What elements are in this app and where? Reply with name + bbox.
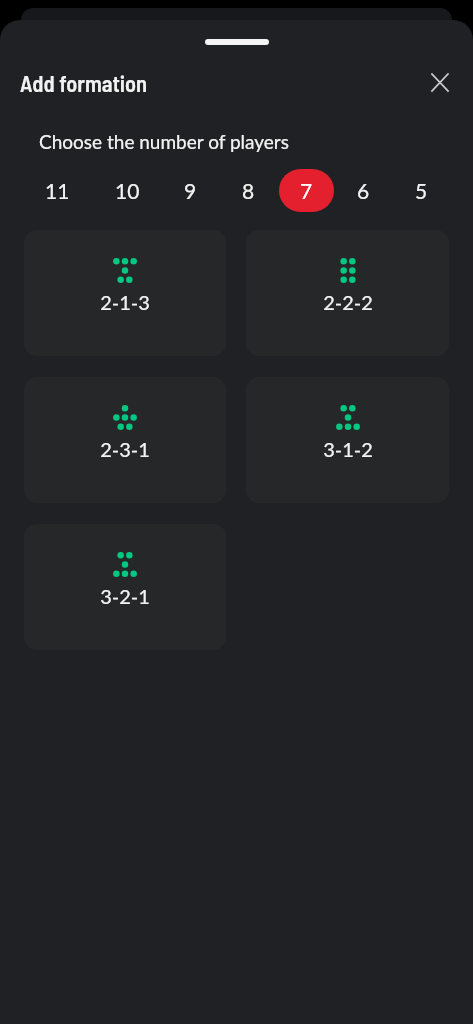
button[interactable]: 2-1-3	[24, 230, 226, 356]
button[interactable]: 2-3-1	[24, 377, 226, 503]
staticText: 10	[115, 178, 140, 203]
staticText: Add formation	[20, 69, 148, 96]
staticText: Choose the number of players	[39, 130, 289, 153]
button[interactable]: 9	[163, 169, 218, 212]
button[interactable]: 3-1-2	[246, 377, 449, 503]
button[interactable]: 10	[94, 169, 161, 212]
staticText: 6	[357, 178, 370, 203]
button[interactable]: 5	[394, 169, 449, 212]
staticText: 7	[300, 178, 313, 203]
staticText: 8	[242, 178, 255, 203]
staticText: 11	[45, 178, 70, 203]
staticText: 3-2-1	[100, 584, 150, 608]
staticText: 2-3-1	[100, 437, 150, 461]
button[interactable]: 7	[279, 169, 334, 212]
staticText: 2-1-3	[100, 290, 150, 314]
button[interactable]: 8	[221, 169, 276, 212]
button[interactable]: 2-2-2	[246, 230, 449, 356]
staticText: 2-2-2	[323, 290, 373, 314]
staticText: 9	[184, 178, 197, 203]
button[interactable]: 3-2-1	[24, 524, 226, 650]
staticText: 5	[415, 178, 428, 203]
button[interactable]: 11	[24, 169, 91, 212]
button[interactable]: 6	[336, 169, 391, 212]
button[interactable]: Close	[420, 62, 460, 102]
staticText: 3-1-2	[323, 437, 373, 461]
